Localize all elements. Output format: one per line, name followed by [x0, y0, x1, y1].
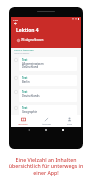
staticText: Lektionen [18, 123, 28, 126]
button[interactable]: Profil [58, 115, 81, 127]
staticText: Heute erledigen [14, 52, 30, 55]
staticText: Berlin [22, 80, 30, 84]
staticText: Übungen [42, 123, 52, 126]
staticText: Deutschlands [22, 94, 40, 98]
staticText: Text [22, 58, 28, 61]
staticText: Text [22, 76, 28, 79]
staticText: Text [22, 106, 28, 109]
staticText: Profil [67, 123, 73, 126]
staticText: Allgemeinwissen Deutschland [22, 62, 44, 69]
staticText: Text [22, 90, 28, 93]
button[interactable]: Text [19, 57, 77, 71]
staticText: 0% abgeschlossen [21, 38, 44, 42]
button[interactable]: Lektionen [11, 115, 35, 127]
staticText: Eine Vielzahl an Inhalten übersichtlich … [0, 156, 92, 177]
button[interactable]: Back [28, 129, 30, 131]
button[interactable]: Text [19, 105, 77, 118]
button[interactable]: Text [19, 89, 77, 102]
staticText: 1:27 [13, 18, 18, 21]
button[interactable]: Übungen [35, 115, 58, 127]
staticText: Lektion 4 [16, 27, 39, 34]
button[interactable]: Back [14, 22, 17, 25]
staticText: Geographie [22, 110, 38, 114]
button[interactable]: Text [19, 75, 77, 86]
staticText: NOCH 4 ÜBUNGEN [14, 49, 34, 52]
